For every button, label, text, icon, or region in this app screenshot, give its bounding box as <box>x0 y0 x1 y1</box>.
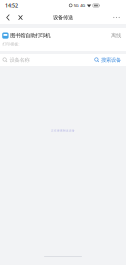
button[interactable]: 搜索设备 <box>94 56 121 63</box>
button[interactable]: Close <box>14 11 27 24</box>
staticText: 5G <box>74 3 79 8</box>
staticText: 14:52 <box>5 2 18 9</box>
staticText: 离线 <box>111 32 121 39</box>
button[interactable]: More <box>109 11 124 24</box>
staticText: 设备名称 <box>9 57 29 63</box>
staticText: 搜索设备 <box>101 57 121 63</box>
button[interactable]: Back <box>1 11 14 24</box>
staticText: 打印模板: <box>2 41 19 47</box>
staticText: 4G <box>80 3 85 8</box>
staticText: 正在搜索附近设备 <box>51 129 75 132</box>
staticText: 图书馆自助打印机 <box>10 32 50 39</box>
staticText: 设备传送 <box>53 14 73 21</box>
button[interactable]: 图书馆自助打印机 <box>0 28 126 51</box>
